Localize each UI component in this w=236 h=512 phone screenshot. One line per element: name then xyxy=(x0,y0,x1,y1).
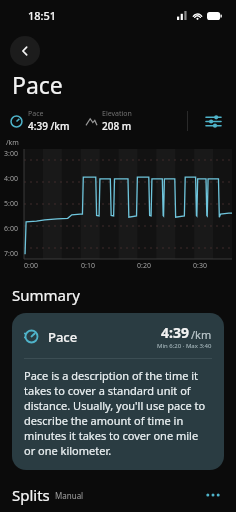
staticText: Manual xyxy=(55,490,84,501)
staticText: 7:00 xyxy=(4,249,18,259)
staticText: Pace xyxy=(48,328,78,346)
staticText: Elevation xyxy=(102,109,132,119)
staticText: 5:00 xyxy=(4,199,18,209)
staticText: Pace xyxy=(12,69,63,100)
staticText: /km xyxy=(6,138,19,148)
button[interactable]: More options xyxy=(202,484,224,506)
staticText: Pace xyxy=(28,109,44,119)
staticText: Splits xyxy=(12,485,50,505)
button[interactable]: Pace xyxy=(12,313,224,470)
staticText: 6:00 xyxy=(4,224,18,234)
staticText: Summary xyxy=(12,285,80,305)
staticText: 0:30 xyxy=(193,261,207,271)
staticText: 18:51 xyxy=(28,8,57,23)
staticText: /km xyxy=(191,327,212,342)
staticText: 4:39 /km xyxy=(28,119,70,133)
button[interactable]: Back xyxy=(10,36,40,66)
staticText: 0:10 xyxy=(81,261,95,271)
staticText: 4:00 xyxy=(4,174,18,184)
staticText: Min 6:20 · Max 3:40 xyxy=(157,342,212,350)
staticText: Pace is a description of the time it tak… xyxy=(24,368,212,458)
staticText: 0:00 xyxy=(24,261,38,271)
staticText: 4:39 xyxy=(161,323,189,342)
button[interactable]: Chart settings xyxy=(200,108,226,134)
staticText: 0:20 xyxy=(137,261,151,271)
staticText: 3:00 xyxy=(4,149,18,159)
staticText: 208 m xyxy=(102,119,132,133)
